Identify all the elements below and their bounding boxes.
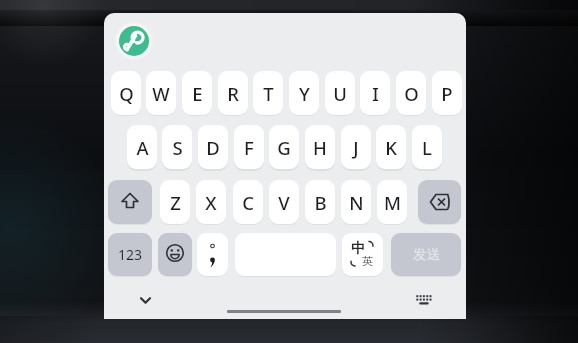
button[interactable]: X: [196, 180, 226, 224]
staticText: H: [313, 135, 327, 160]
staticText: C: [242, 190, 254, 215]
button[interactable]: A: [127, 125, 157, 169]
staticText: I: [372, 81, 379, 106]
button[interactable]: G: [269, 125, 299, 169]
button[interactable]: R: [218, 71, 248, 115]
staticText: M: [384, 190, 401, 215]
button[interactable]: V: [269, 180, 299, 224]
button[interactable]: 发送: [391, 233, 461, 276]
button[interactable]: E: [182, 71, 212, 115]
staticText: A: [136, 135, 149, 160]
staticText: J: [353, 135, 359, 160]
staticText: P: [441, 81, 453, 106]
staticText: B: [314, 190, 327, 215]
staticText: N: [349, 190, 364, 215]
button[interactable]: J: [341, 125, 371, 169]
staticText: 123: [118, 245, 143, 264]
staticText: L: [422, 135, 432, 160]
button[interactable]: S: [162, 125, 192, 169]
staticText: D: [206, 135, 220, 160]
staticText: Y: [299, 81, 310, 106]
staticText: 中: [351, 240, 365, 258]
staticText: E: [192, 81, 203, 106]
button[interactable]: U: [325, 71, 355, 115]
button[interactable]: L: [412, 125, 442, 169]
staticText: 英: [362, 254, 373, 268]
staticText: T: [263, 81, 274, 106]
button[interactable]: F: [234, 125, 264, 169]
button[interactable]: Y: [289, 71, 319, 115]
staticText: G: [277, 135, 291, 160]
button[interactable]: C: [233, 180, 263, 224]
staticText: X: [205, 190, 217, 215]
button[interactable]: N: [341, 180, 371, 224]
button[interactable]: [131, 287, 159, 313]
button[interactable]: W: [146, 71, 176, 115]
button[interactable]: Z: [160, 180, 190, 224]
staticText: F: [244, 135, 254, 160]
button[interactable]: [158, 233, 192, 276]
button[interactable]: D: [198, 125, 228, 169]
staticText: K: [385, 135, 397, 160]
button[interactable]: P: [432, 71, 462, 115]
button[interactable]: [418, 180, 461, 224]
staticText: R: [227, 81, 239, 106]
button[interactable]: [410, 287, 438, 313]
button[interactable]: O: [396, 71, 426, 115]
staticText: U: [333, 81, 347, 106]
button[interactable]: Q: [111, 71, 141, 115]
button[interactable]: B: [305, 180, 335, 224]
staticText: W: [152, 81, 170, 106]
button[interactable]: T: [253, 71, 283, 115]
button[interactable]: 中: [342, 233, 383, 276]
button[interactable]: M: [377, 180, 407, 224]
button[interactable]: [119, 26, 149, 56]
staticText: O: [404, 81, 419, 106]
button[interactable]: I: [360, 71, 390, 115]
staticText: S: [172, 135, 183, 160]
staticText: V: [278, 190, 290, 215]
button[interactable]: H: [305, 125, 335, 169]
button[interactable]: [108, 180, 152, 224]
staticText: Z: [170, 190, 181, 215]
button[interactable]: K: [376, 125, 406, 169]
button[interactable]: [197, 233, 228, 276]
button[interactable]: 123: [108, 233, 152, 276]
staticText: 发送: [413, 246, 440, 263]
staticText: Q: [119, 81, 134, 106]
